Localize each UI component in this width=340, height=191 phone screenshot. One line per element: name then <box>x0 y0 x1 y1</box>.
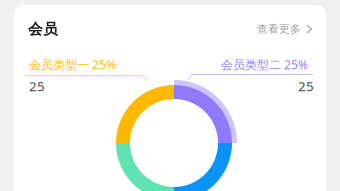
staticText: 查看更多 <box>257 22 301 35</box>
staticText: 会员类型二 25% <box>221 56 308 72</box>
button[interactable]: 查看更多 <box>257 18 312 40</box>
staticText: 25 <box>298 77 314 95</box>
staticText: 25 <box>29 77 45 95</box>
staticText: 会员类型一 25% <box>29 56 116 72</box>
staticText: 会员 <box>28 20 58 38</box>
